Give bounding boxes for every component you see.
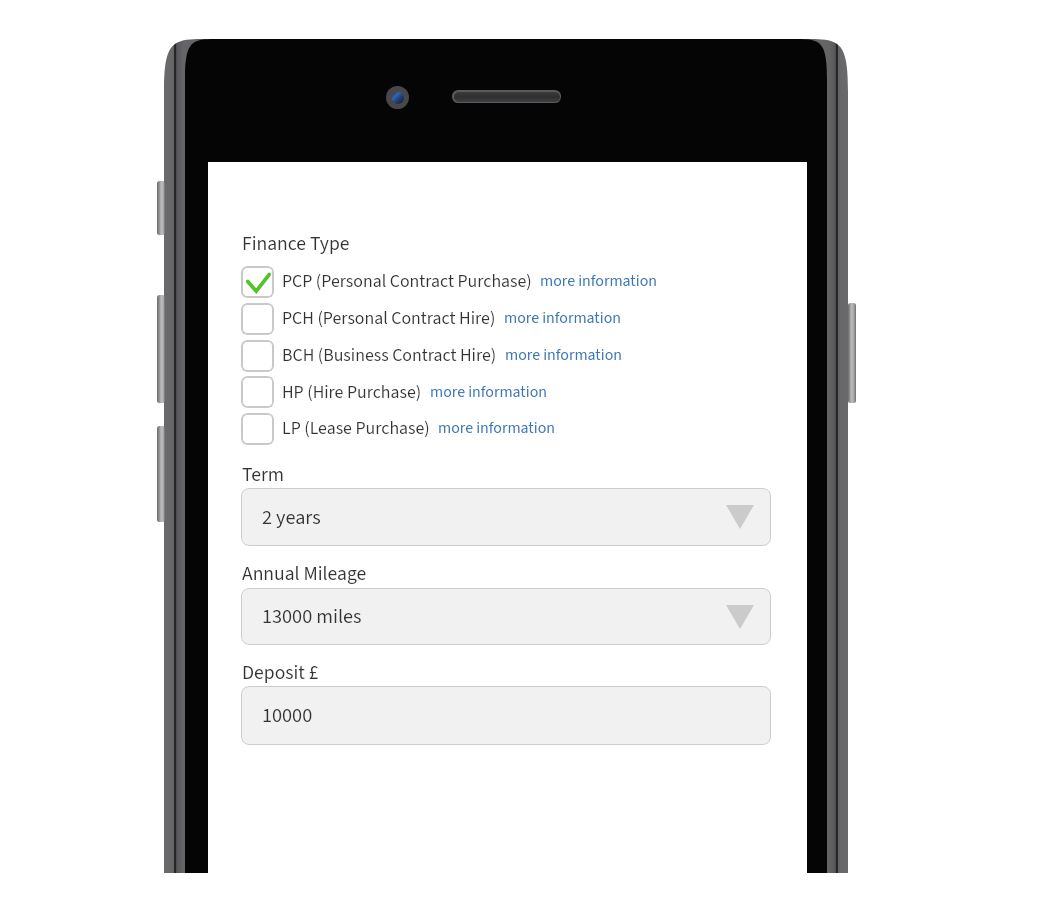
button[interactable]: Selected option: [241, 266, 274, 298]
button[interactable]: PCH (Personal Contract Hire): [282, 306, 621, 331]
button[interactable]: Select option: [241, 413, 274, 445]
staticText: BCH (Business Contract Hire): [282, 343, 497, 368]
button[interactable]: Select option: [241, 303, 274, 335]
button[interactable]: more information: [505, 344, 622, 367]
other: Power button: [848, 303, 856, 403]
staticText: HP (Hire Purchase): [282, 380, 422, 405]
staticText: PCP (Personal Contract Purchase): [282, 269, 532, 294]
button[interactable]: more information: [540, 270, 657, 293]
staticText: Finance Type: [242, 230, 350, 258]
other: Side button: [157, 426, 165, 522]
staticText: Deposit £: [242, 659, 319, 687]
other: Side button: [157, 181, 165, 235]
other: Open list: [726, 605, 754, 629]
button[interactable]: PCP (Personal Contract Purchase): [282, 269, 657, 294]
staticText: 13000 miles: [262, 602, 362, 631]
button[interactable]: Select option: [241, 340, 274, 372]
staticText: Term: [242, 461, 284, 489]
button[interactable]: Select option: [241, 376, 274, 408]
staticText: 2 years: [262, 503, 321, 532]
other: Open list: [726, 505, 754, 529]
button[interactable]: BCH (Business Contract Hire): [282, 343, 622, 368]
button[interactable]: more information: [504, 307, 621, 330]
button[interactable]: LP (Lease Purchase): [282, 416, 555, 441]
button[interactable]: 2 years: [241, 488, 771, 546]
staticText: LP (Lease Purchase): [282, 416, 430, 441]
button[interactable]: more information: [430, 381, 547, 404]
button[interactable]: 10000: [241, 686, 771, 745]
staticText: 10000: [262, 701, 313, 730]
staticText: Annual Mileage: [242, 560, 367, 588]
staticText: PCH (Personal Contract Hire): [282, 306, 496, 331]
other: Side button: [157, 295, 165, 403]
button[interactable]: more information: [438, 417, 555, 440]
button[interactable]: HP (Hire Purchase): [282, 380, 547, 405]
button[interactable]: 13000 miles: [241, 588, 771, 645]
